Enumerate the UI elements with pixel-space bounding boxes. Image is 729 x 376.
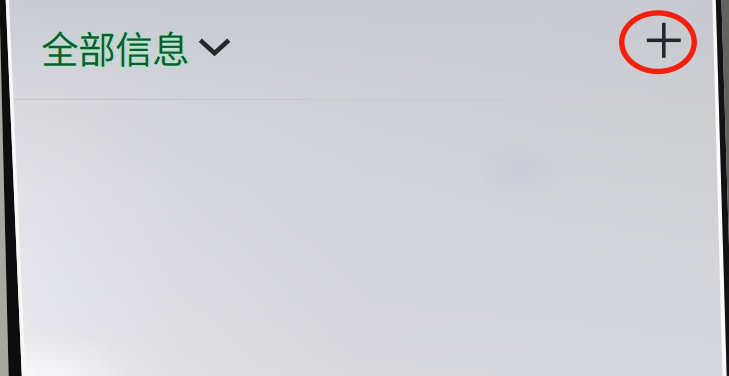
button[interactable]: New message — [639, 15, 689, 66]
staticText: 全部信息 — [43, 20, 191, 75]
staticText: 全部信息 — [41, 19, 189, 73]
staticText: 全部信息 — [41, 20, 189, 75]
staticText: 全部信息 — [40, 20, 188, 75]
staticText: 全部信息 — [41, 22, 189, 76]
button[interactable]: 全部信息 — [36, 11, 236, 84]
